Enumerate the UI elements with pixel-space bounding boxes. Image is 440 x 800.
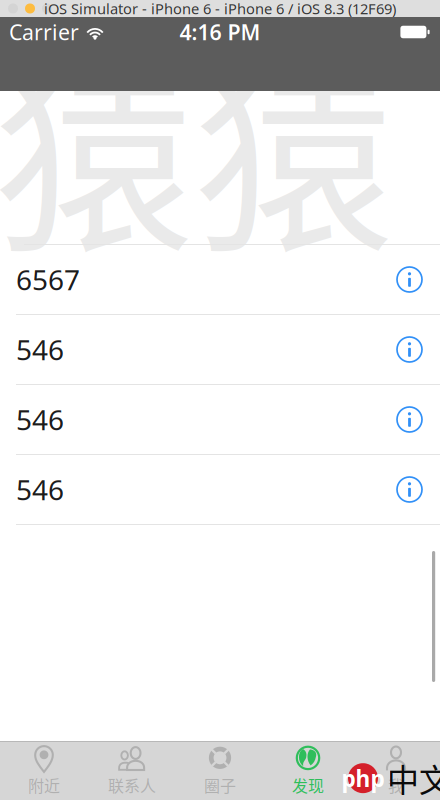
staticText: 546 — [16, 401, 64, 438]
staticText: php — [341, 763, 384, 793]
staticText: 4:16 PM — [179, 18, 260, 46]
staticText: 中文网 — [387, 755, 440, 800]
button[interactable]: 6567 — [0, 245, 440, 315]
button[interactable]: 联系人 — [88, 742, 176, 800]
staticText: 发现 — [292, 773, 324, 797]
button[interactable]: 圈子 — [176, 742, 264, 800]
button[interactable]: 附近 — [0, 742, 88, 800]
staticText: 圈子 — [204, 773, 236, 797]
staticText: iOS Simulator - iPhone 6 - iPhone 6 / iO… — [44, 0, 396, 18]
button[interactable]: 发现 — [264, 742, 352, 800]
button[interactable]: 546 — [0, 385, 440, 455]
staticText: 我 — [388, 773, 404, 797]
staticText: 联系人 — [108, 773, 156, 797]
button[interactable]: 546 — [0, 455, 440, 525]
button[interactable]: 我 — [352, 742, 440, 800]
staticText: 猿猿 — [0, 3, 394, 293]
staticText: 546 — [16, 471, 64, 508]
staticText: 6567 — [16, 261, 80, 298]
staticText: Carrier — [9, 18, 79, 46]
staticText: 546 — [16, 331, 64, 368]
button[interactable]: 546 — [0, 315, 440, 385]
staticText: 附近 — [28, 773, 60, 797]
